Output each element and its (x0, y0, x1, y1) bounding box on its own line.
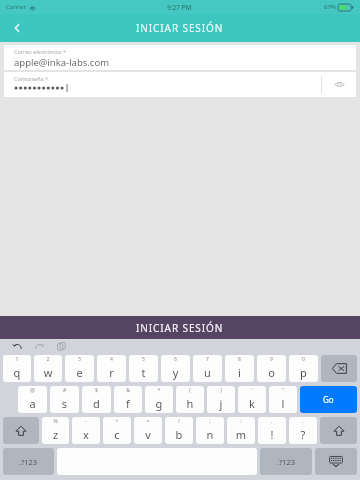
staticText: c (103, 427, 131, 442)
staticText: t (129, 365, 158, 380)
staticText: apple@inka-labs.com (14, 56, 110, 69)
staticText: - (72, 418, 100, 425)
staticText: INICIAR SESIÓN (136, 321, 224, 335)
button[interactable]: 0 (289, 355, 318, 382)
staticText: 2 (34, 356, 62, 363)
button[interactable]: - (72, 417, 100, 444)
button[interactable]: # (50, 386, 79, 413)
button[interactable]: ; (196, 417, 224, 444)
staticText: p (289, 365, 318, 380)
staticText: , (258, 418, 286, 425)
staticText: o (257, 365, 286, 380)
staticText: h (176, 396, 204, 411)
staticText: s (50, 396, 79, 411)
staticText: ' (238, 387, 266, 394)
staticText: = (134, 418, 162, 425)
button[interactable]: Undo (10, 339, 24, 353)
staticText: e (65, 365, 94, 380)
button[interactable]: % (42, 417, 69, 444)
staticText: q (3, 365, 31, 380)
button[interactable]: 9 (257, 355, 286, 382)
staticText: Correo electrónico * (14, 48, 67, 55)
button[interactable]: @ (18, 386, 47, 413)
button[interactable]: / (165, 417, 193, 444)
staticText: u (193, 365, 222, 380)
button[interactable]: . (289, 417, 317, 444)
staticText: 8 (225, 356, 254, 363)
staticText: & (114, 387, 142, 394)
button[interactable]: Go (300, 386, 357, 413)
staticText: .?123 (277, 457, 296, 467)
staticText: 1 (3, 356, 31, 363)
button[interactable]: + (103, 417, 131, 444)
button[interactable]: 3 (65, 355, 94, 382)
button[interactable]: ( (176, 386, 204, 413)
staticText: 4 (97, 356, 126, 363)
staticText: 9 (257, 356, 286, 363)
staticText: g (145, 396, 173, 411)
button[interactable]: 4 (97, 355, 126, 382)
staticText: : (227, 418, 255, 425)
button[interactable]: Paste (54, 339, 68, 353)
staticText: $ (82, 387, 111, 394)
button[interactable]: Redo (32, 339, 46, 353)
button[interactable]: 8 (225, 355, 254, 382)
staticText: INICIAR SESIÓN (136, 21, 224, 35)
button[interactable]: " (269, 386, 297, 413)
button[interactable]: .?123 (3, 448, 54, 475)
staticText: 7 (193, 356, 222, 363)
staticText: d (82, 396, 111, 411)
button[interactable]: Contraseña * (14, 75, 321, 93)
button[interactable]: Hide keyboard (315, 448, 357, 475)
staticText: m (227, 427, 255, 442)
staticText: / (165, 418, 193, 425)
button[interactable]: 5 (129, 355, 158, 382)
staticText: j (207, 396, 235, 411)
staticText: b (165, 427, 193, 442)
staticText: Carrier (6, 3, 26, 11)
staticText: @ (18, 387, 47, 394)
button[interactable]: Show password (322, 72, 356, 97)
staticText: # (50, 387, 79, 394)
button[interactable]: ) (207, 386, 235, 413)
button[interactable]: $ (82, 386, 111, 413)
button[interactable]: : (227, 417, 255, 444)
button[interactable]: & (114, 386, 142, 413)
staticText: ( (176, 387, 204, 394)
button[interactable]: Backspace (321, 355, 357, 382)
staticText: 9:27 PM (167, 3, 192, 12)
staticText: .?123 (19, 457, 38, 467)
staticText: z (42, 427, 69, 442)
button[interactable]: , (258, 417, 286, 444)
button[interactable]: * (145, 386, 173, 413)
button[interactable]: INICIAR SESIÓN (0, 316, 360, 339)
button[interactable]: Shift (320, 417, 357, 444)
staticText: Go (323, 394, 334, 405)
staticText: i (225, 365, 254, 380)
staticText: ) (207, 387, 235, 394)
staticText: l (269, 396, 297, 411)
staticText: 5 (129, 356, 158, 363)
button[interactable]: 7 (193, 355, 222, 382)
staticText: 67% (324, 3, 336, 11)
button[interactable]: Back (0, 14, 34, 42)
staticText: w (34, 365, 62, 380)
button[interactable]: = (134, 417, 162, 444)
button[interactable]: ' (238, 386, 266, 413)
staticText: + (103, 418, 131, 425)
staticText: 6 (161, 356, 190, 363)
button[interactable]: 2 (34, 355, 62, 382)
staticText: ; (196, 418, 224, 425)
staticText: % (42, 418, 69, 425)
staticText: * (145, 387, 173, 394)
staticText: ? (289, 427, 317, 442)
button[interactable]: Shift (3, 417, 39, 444)
staticText: y (161, 365, 190, 380)
button[interactable]: 1 (3, 355, 31, 382)
button[interactable]: .?123 (260, 448, 312, 475)
staticText: 3 (65, 356, 94, 363)
button[interactable]: Correo electrónico * (4, 45, 356, 70)
button[interactable]: 6 (161, 355, 190, 382)
